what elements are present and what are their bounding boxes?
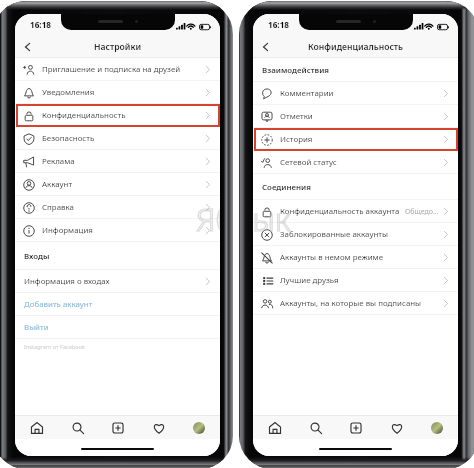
staticText: Конфиденциальность аккаунта [280,206,400,217]
staticText: Аккаунт [42,179,73,190]
button[interactable]: Search [305,417,327,439]
button[interactable]: Отметки [253,105,458,128]
button[interactable]: New post [107,417,129,439]
staticText: Яблык [253,197,291,241]
staticText: Яблык [196,197,220,241]
button[interactable]: Информация о входах [15,270,220,293]
staticText: Заблокированные аккаунты [280,229,388,240]
button[interactable]: Home [264,417,286,439]
button[interactable]: Аккаунт [15,173,220,196]
button[interactable]: Аккаунты, на которые вы подписаны [253,292,458,315]
button[interactable]: Аккаунты в немом режиме [253,246,458,269]
button[interactable]: Заблокированные аккаунты [253,223,458,246]
button[interactable]: Справка [15,196,220,219]
button[interactable]: Profile [188,417,210,439]
staticText: 16:18 [30,19,52,30]
staticText: Конфиденциальность [42,110,126,121]
staticText: Информация [42,225,93,236]
staticText: Instagram от Facebook [24,343,86,351]
button[interactable]: Конфиденциальность аккаунта [253,200,458,223]
button[interactable]: Profile [426,417,448,439]
button[interactable]: Уведомления [15,81,220,104]
button[interactable]: Конфиденциальность [15,104,220,127]
staticText: Взаимодействия [262,65,330,76]
button[interactable]: Search [67,417,89,439]
staticText: Приглашение и подписка на друзей [42,64,181,75]
button[interactable]: Комментарии [253,82,458,105]
staticText: Добавить аккаунт [24,299,93,310]
button[interactable]: История [253,128,458,151]
staticText: Информация о входах [24,276,110,287]
staticText: Соединения [262,182,311,193]
button[interactable]: Информация [15,219,220,242]
staticText: Входы [24,251,50,262]
staticText: Комментарии [280,88,334,99]
button[interactable]: Приглашение и подписка на друзей [15,58,220,81]
staticText: История [280,134,313,145]
staticText: Сетевой статус [280,157,337,168]
button[interactable]: Безопасность [15,127,220,150]
button[interactable]: New post [345,417,367,439]
staticText: Справка [42,202,74,213]
staticText: Реклама [42,156,75,167]
button[interactable]: Activity [386,417,408,439]
button[interactable]: Добавить аккаунт [15,293,220,316]
staticText: Выйти [24,322,49,333]
staticText: Отметки [280,111,313,122]
button[interactable]: Back [260,37,270,57]
staticText: Аккаунты в немом режиме [280,252,383,263]
staticText: 16:18 [268,19,290,30]
button[interactable]: Сетевой статус [253,151,458,174]
staticText: Аккаунты, на которые вы подписаны [280,298,422,309]
button[interactable]: Выйти [15,316,220,339]
staticText: Уведомления [42,87,95,98]
button[interactable]: Реклама [15,150,220,173]
button[interactable]: Лучшие друзья [253,269,458,292]
staticText: Настройки [94,41,142,53]
staticText: Лучшие друзья [280,275,339,286]
button[interactable]: Back [22,37,32,57]
button[interactable]: Home [26,417,48,439]
button[interactable]: Activity [148,417,170,439]
staticText: Конфиденциальность [308,41,403,53]
staticText: Безопасность [42,133,95,144]
staticText: Общедо... [405,207,439,217]
